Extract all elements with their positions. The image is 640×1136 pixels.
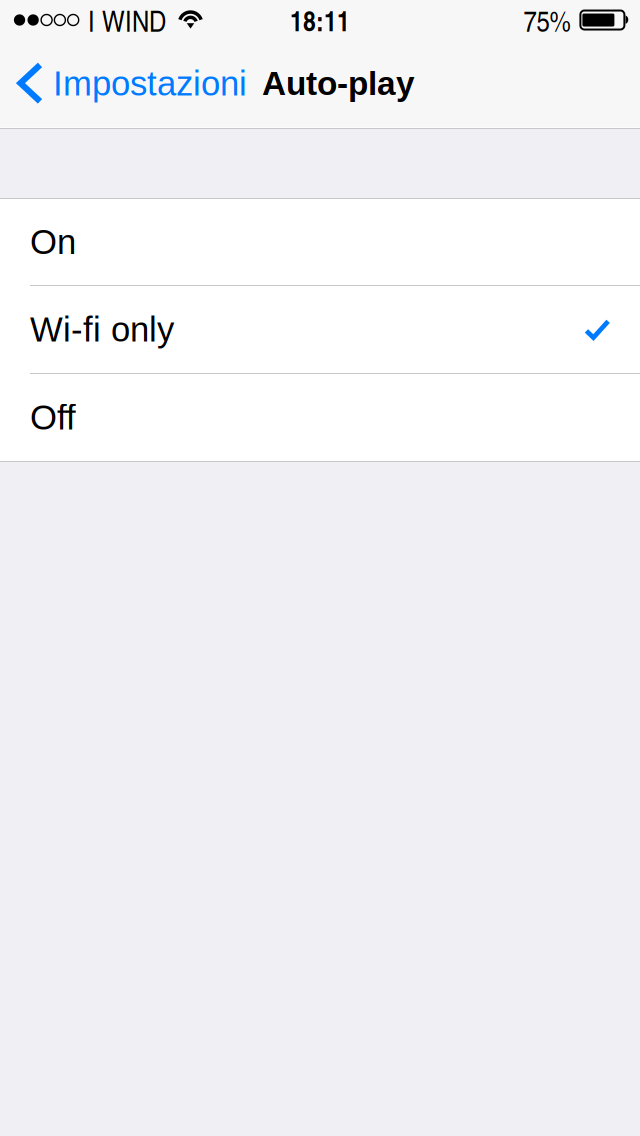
staticText: On — [30, 223, 76, 261]
staticText: Off — [30, 398, 76, 437]
button[interactable]: Wi-fi only — [0, 286, 640, 373]
staticText: Impostazioni — [53, 64, 247, 103]
button[interactable]: On — [0, 199, 640, 285]
staticText: Auto-play — [262, 65, 415, 102]
staticText: Wi-fi only — [30, 310, 174, 349]
button[interactable]: Back to Impostazioni — [0, 51, 247, 116]
staticText: 18:11 — [290, 0, 350, 40]
staticText: I WIND — [88, 0, 166, 40]
button[interactable]: Off — [0, 374, 640, 461]
staticText: 75% — [523, 0, 570, 40]
